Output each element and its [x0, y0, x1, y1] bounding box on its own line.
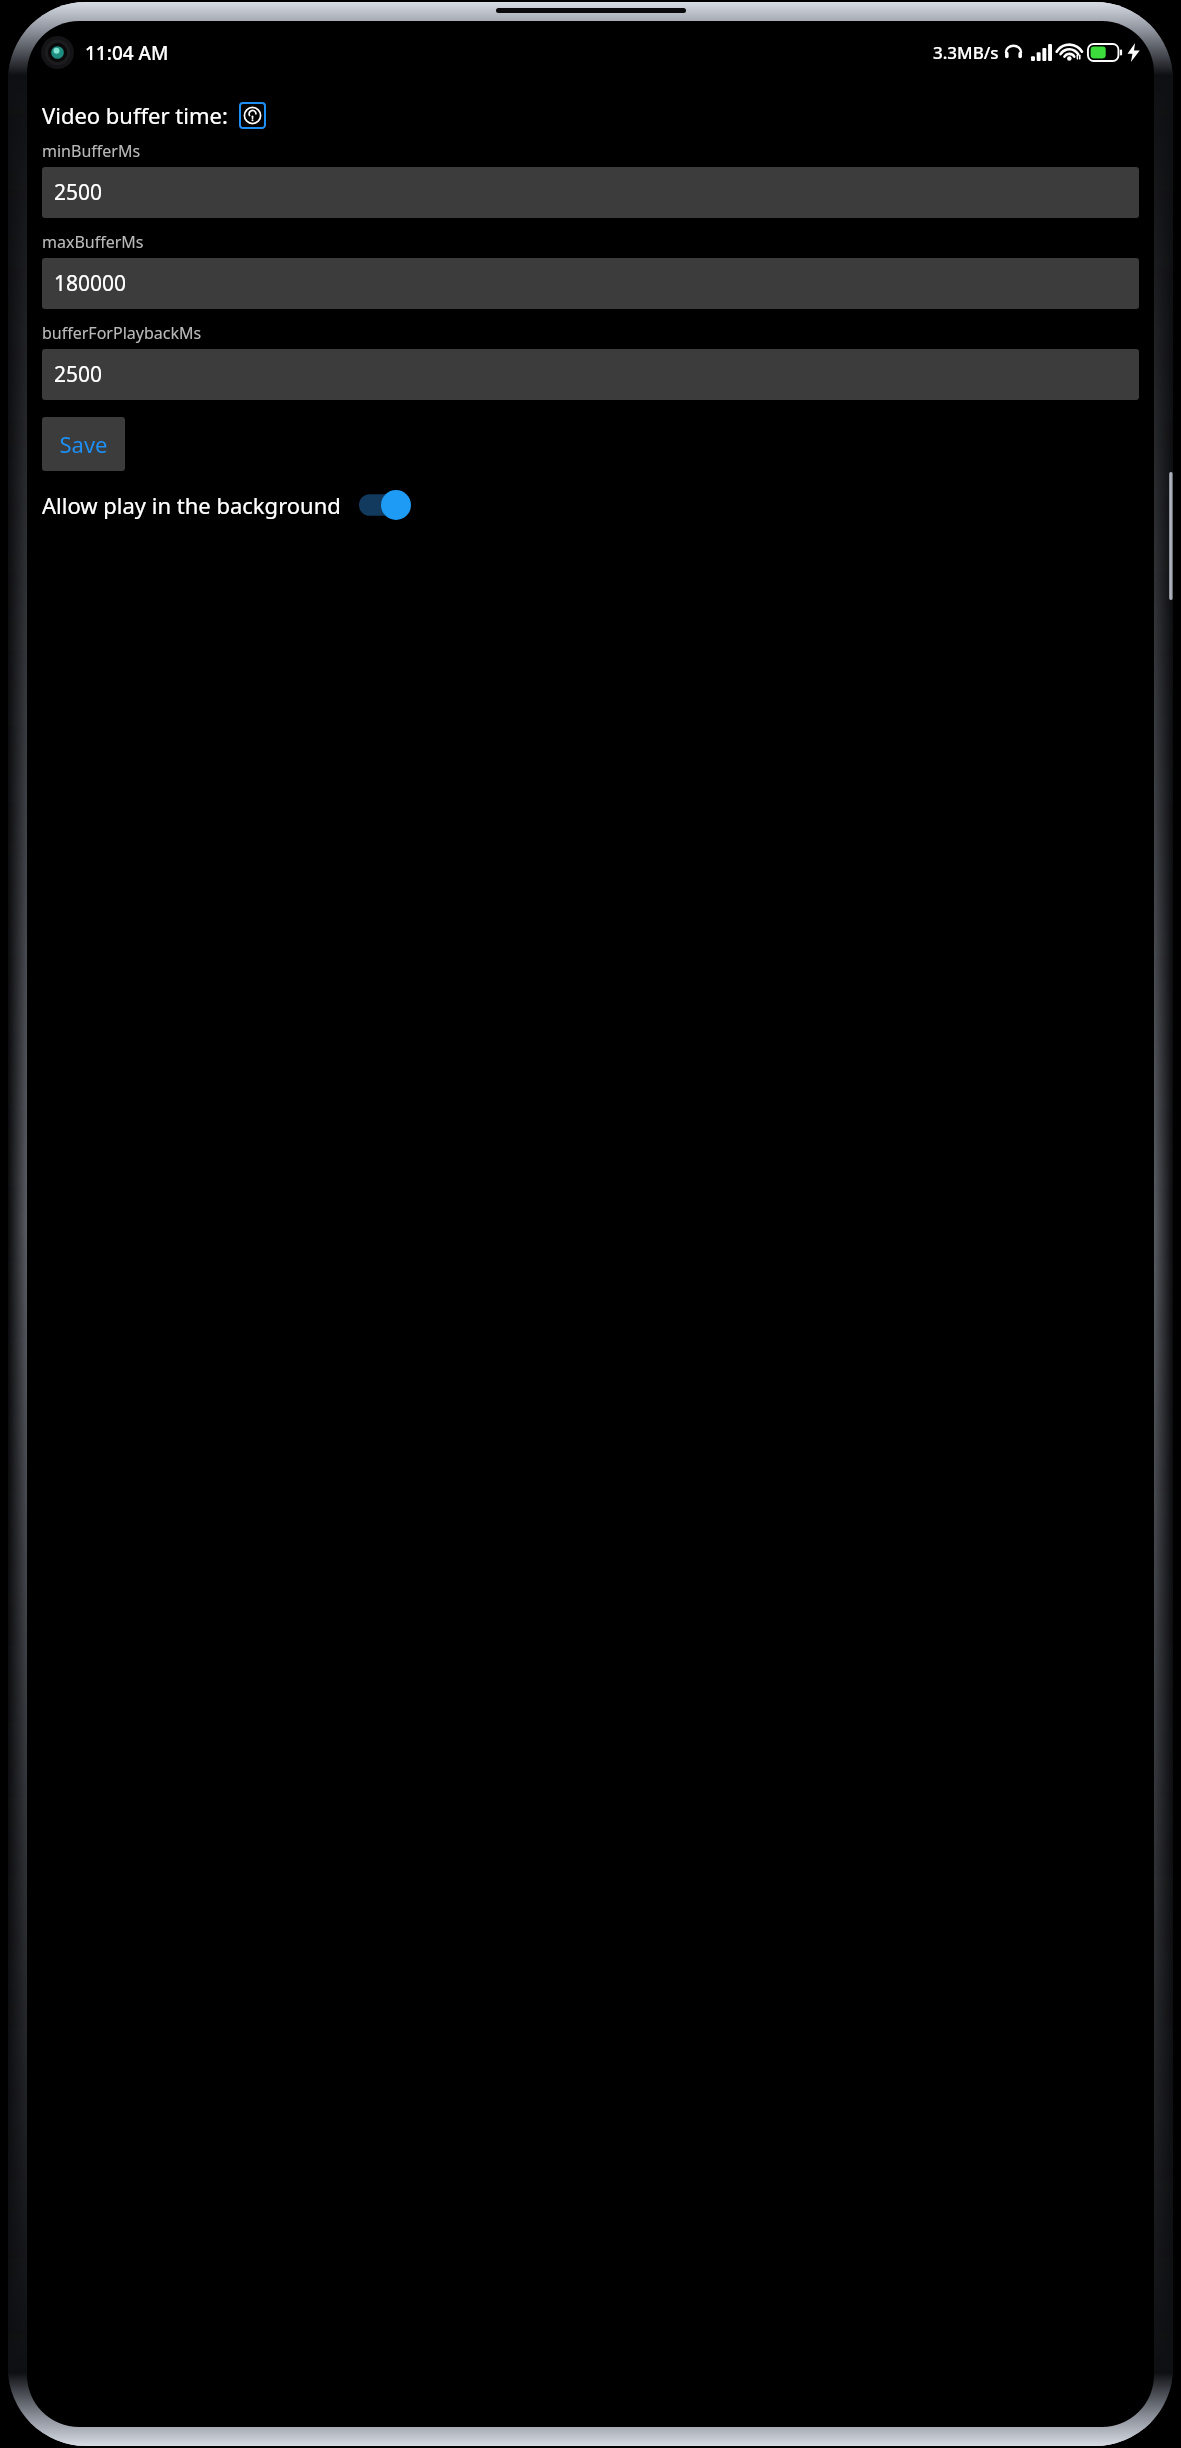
staticText: 180000 — [54, 269, 127, 298]
staticText: 2500 — [54, 360, 103, 389]
staticText: Video buffer time: — [42, 100, 228, 130]
staticText: minBufferMs — [42, 140, 141, 162]
staticText: Save — [59, 429, 108, 459]
button[interactable]: Save — [42, 417, 125, 471]
staticText: 3.3MB/s — [933, 41, 999, 64]
button[interactable]: 2500 — [42, 167, 1139, 218]
staticText: 2500 — [54, 178, 103, 207]
staticText: Allow play in the background — [42, 490, 341, 520]
staticText: maxBufferMs — [42, 231, 144, 253]
staticText: bufferForPlaybackMs — [42, 322, 202, 344]
button[interactable]: 180000 — [42, 258, 1139, 309]
button[interactable]: Allow play in the background — [42, 490, 1139, 520]
button[interactable]: 2500 — [42, 349, 1139, 400]
button[interactable]: Help about video buffer time — [239, 102, 266, 129]
staticText: 11:04 AM — [85, 40, 169, 66]
